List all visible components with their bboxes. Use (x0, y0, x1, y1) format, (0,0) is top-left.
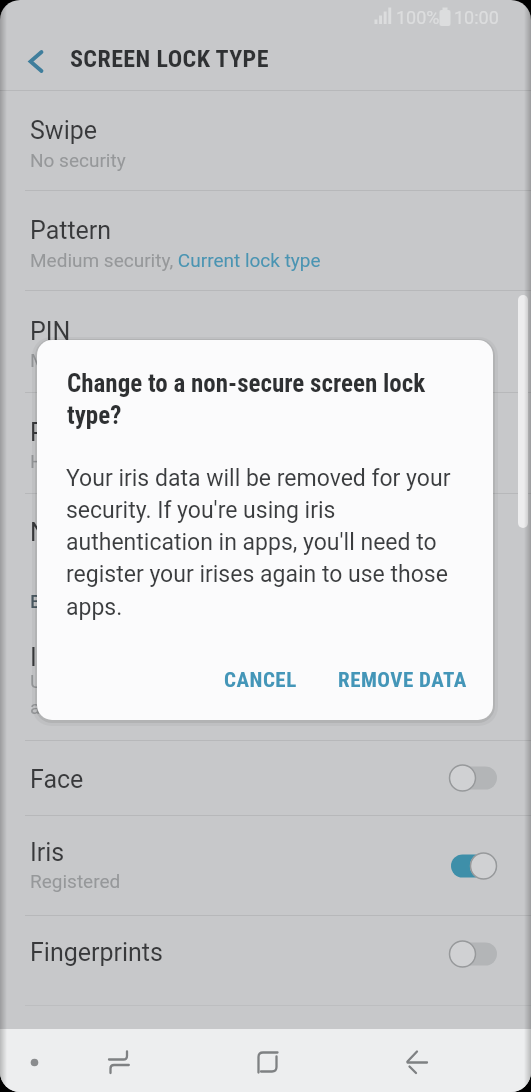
button[interactable] (444, 761, 502, 795)
button[interactable]: CANCEL (200, 657, 320, 703)
button[interactable] (0, 392, 531, 490)
staticText: High security (30, 450, 141, 472)
button[interactable] (248, 1040, 288, 1092)
staticText: Medium to high security (30, 349, 233, 371)
button[interactable] (98, 1040, 142, 1092)
staticText: Biometrics (30, 590, 123, 612)
staticText: Registered (30, 870, 121, 892)
button[interactable] (0, 916, 531, 1005)
button[interactable] (0, 600, 531, 730)
staticText: No security (30, 149, 126, 171)
button[interactable] (444, 849, 502, 883)
button[interactable] (444, 937, 502, 971)
staticText: Your iris data will be removed for your (66, 465, 451, 492)
staticText: 10:00 (454, 7, 499, 28)
staticText: achieve better results (30, 696, 211, 718)
button[interactable] (0, 491, 531, 558)
staticText: CANCEL (224, 668, 297, 693)
button[interactable] (14, 42, 58, 82)
staticText: REMOVE DATA (338, 668, 467, 693)
staticText: PIN (30, 317, 71, 346)
staticText: Password (30, 418, 141, 447)
staticText: SCREEN LOCK TYPE (70, 45, 269, 73)
button[interactable]: REMOVE DATA (332, 657, 472, 703)
staticText: Intelligent Scan (30, 643, 202, 672)
staticText: authentication in apps, you'll need to (66, 529, 437, 556)
staticText: register your irises again to use those (66, 561, 448, 588)
button[interactable] (0, 291, 531, 391)
button[interactable] (0, 191, 531, 290)
button[interactable] (394, 1040, 438, 1092)
staticText: Face (30, 765, 84, 794)
staticText: Use both your face and irises to (30, 670, 296, 692)
staticText: security. If you're using iris (66, 497, 336, 524)
button[interactable] (0, 816, 531, 915)
staticText: Fingerprints (30, 938, 163, 967)
staticText: 100% (396, 7, 440, 28)
button[interactable] (0, 731, 531, 815)
staticText: Pattern (30, 216, 112, 245)
staticText: Swipe (30, 116, 98, 145)
staticText: Medium security, Current lock type (30, 249, 321, 271)
button[interactable] (0, 91, 531, 190)
staticText: Iris (30, 838, 65, 867)
staticText: Change to a non-secure screen lock type? (67, 369, 426, 430)
staticText: apps. (66, 594, 123, 621)
staticText: None (30, 518, 90, 547)
